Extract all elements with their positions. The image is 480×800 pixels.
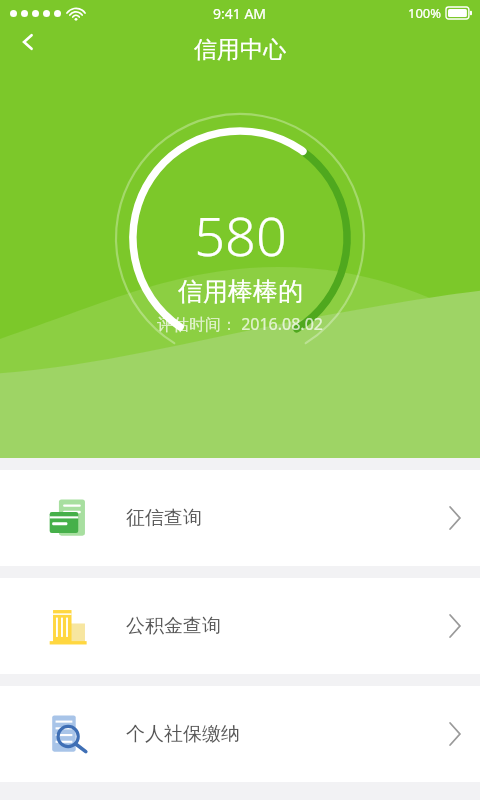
staticText: 信用中心 <box>194 35 286 64</box>
button[interactable]: Back <box>4 18 52 66</box>
staticText: 100% <box>408 4 442 22</box>
staticText: 公积金查询 <box>126 614 221 638</box>
staticText: 征信查询 <box>126 506 202 530</box>
staticText: 信用棒棒的 <box>178 276 303 307</box>
button[interactable]: 个人社保缴纳 <box>0 686 480 782</box>
staticText: 580 <box>194 198 287 272</box>
staticText: 个人社保缴纳 <box>126 722 240 746</box>
staticText: 9:41 AM <box>213 4 267 23</box>
staticText: 评估时间： 2016.08.02 <box>157 313 323 335</box>
button[interactable]: 公积金查询 <box>0 578 480 674</box>
button[interactable]: 征信查询 <box>0 470 480 566</box>
